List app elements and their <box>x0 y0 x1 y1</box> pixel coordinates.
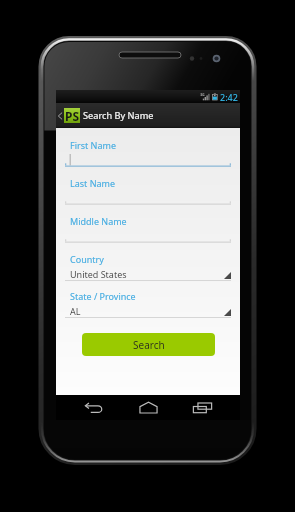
staticText: Middle Name <box>70 215 127 227</box>
staticText: AL <box>70 305 81 317</box>
staticText: State / Province <box>70 290 136 302</box>
button[interactable]: Back <box>56 103 240 128</box>
staticText: Search By Name <box>83 109 154 122</box>
button[interactable]: Country <box>65 253 231 282</box>
staticText: United States <box>70 268 127 280</box>
button[interactable]: Home <box>131 395 166 420</box>
staticText: PS <box>65 108 80 123</box>
button[interactable]: Last Name <box>65 177 231 206</box>
button[interactable]: Search <box>82 333 215 356</box>
button[interactable]: Back <box>76 395 111 420</box>
button[interactable]: Recent apps <box>185 395 220 420</box>
staticText: Search <box>133 338 165 352</box>
button[interactable]: State / Province <box>65 290 231 319</box>
staticText: Last Name <box>70 177 116 189</box>
button[interactable]: First Name <box>65 139 231 168</box>
staticText: Country <box>70 253 104 265</box>
staticText: 2:42 <box>220 91 238 103</box>
staticText: First Name <box>70 139 116 151</box>
other: Back <box>57 110 63 122</box>
button[interactable]: Middle Name <box>65 215 231 244</box>
